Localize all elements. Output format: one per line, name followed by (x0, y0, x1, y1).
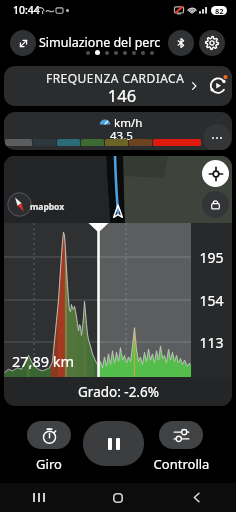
button[interactable]: Blocca (202, 191, 229, 218)
button[interactable]: Impostazioni (199, 30, 225, 56)
button[interactable]: Giro (27, 421, 71, 449)
staticText: 113 (191, 333, 232, 352)
button[interactable]: Recenti (0, 483, 78, 512)
button[interactable]: Posizione (202, 160, 229, 187)
staticText: FREQUENZA CARDIACA (46, 70, 194, 86)
staticText: Controlla (151, 455, 212, 473)
button[interactable]: FREQUENZA CARDIACA (4, 66, 232, 106)
staticText: 10:44 (13, 3, 40, 17)
staticText: Simulazione del perc (39, 34, 161, 51)
button[interactable]: km/h (4, 112, 232, 150)
button[interactable]: Espandi (10, 30, 36, 56)
button[interactable]: Bluetooth (168, 30, 194, 56)
staticText: Giro (17, 455, 81, 473)
staticText: 43.5 (110, 128, 133, 144)
staticText: 195 (191, 248, 232, 267)
staticText: 27,89 km (12, 351, 75, 371)
button[interactable]: Altro (203, 124, 231, 150)
staticText: 82 (215, 6, 224, 15)
staticText: km/h (114, 115, 143, 131)
staticText: 146 (47, 84, 197, 106)
staticText: 154 (191, 291, 232, 310)
staticText: mapbox (30, 201, 65, 213)
button[interactable]: Home (78, 483, 157, 512)
button[interactable]: Indietro (157, 483, 236, 512)
staticText: Grado: -2.6% (78, 383, 159, 401)
button[interactable]: Controlla (159, 421, 203, 449)
button[interactable]: Sensore (207, 74, 229, 96)
button[interactable]: Pausa (83, 421, 144, 466)
